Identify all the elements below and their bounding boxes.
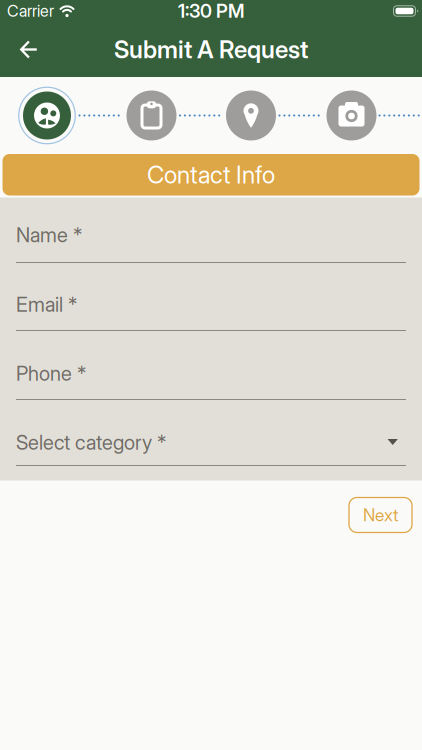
staticText: Next: [363, 505, 398, 525]
button[interactable]: Photo step: [326, 90, 376, 140]
staticText: Select category *: [16, 431, 166, 454]
button[interactable]: Contact Info: [2, 154, 419, 195]
button[interactable]: Name, required text field: [0, 211, 422, 263]
button[interactable]: Back: [9, 29, 49, 69]
staticText: Submit A Request: [114, 35, 308, 64]
staticText: Name *: [16, 223, 82, 247]
staticText: Phone *: [16, 362, 86, 385]
staticText: 1:30 PM: [178, 0, 244, 22]
staticText: Carrier: [7, 2, 54, 20]
button[interactable]: Select category, required: [0, 407, 422, 477]
button[interactable]: Next: [349, 497, 412, 532]
button[interactable]: Contact info step: [18, 86, 76, 144]
button[interactable]: Phone, required text field: [0, 349, 422, 401]
button[interactable]: Email, required text field: [0, 280, 422, 332]
button[interactable]: Location step: [226, 90, 276, 140]
staticText: Email *: [16, 293, 77, 316]
staticText: Contact Info: [147, 161, 275, 189]
button[interactable]: Request details step: [126, 90, 176, 140]
